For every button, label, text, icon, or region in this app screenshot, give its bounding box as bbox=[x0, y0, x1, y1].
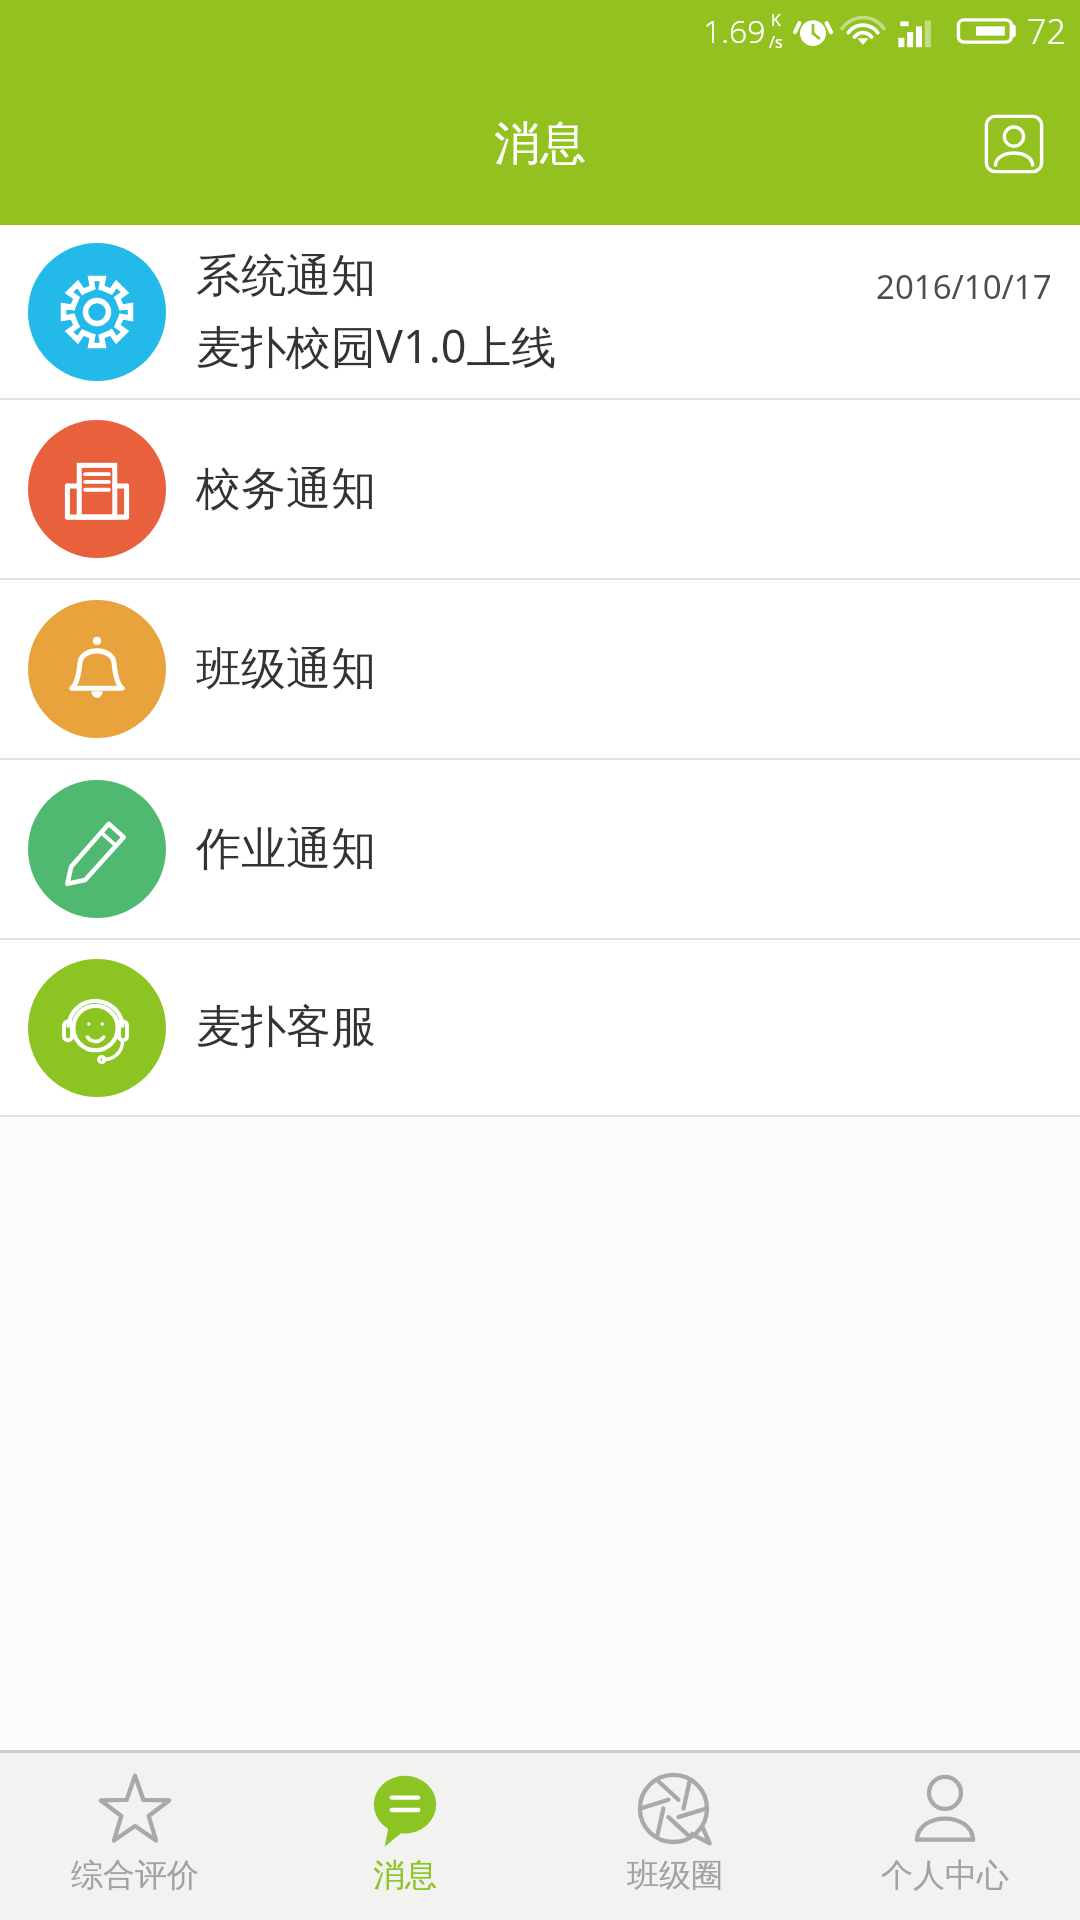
staticText: /s bbox=[769, 31, 783, 53]
staticText: 消息 bbox=[494, 115, 586, 173]
staticText: 综合评价 bbox=[71, 1855, 199, 1895]
staticText: 麦扑校园V1.0上线 bbox=[196, 315, 557, 376]
button[interactable]: 系统通知 bbox=[0, 225, 1080, 398]
button[interactable]: 作业通知 bbox=[0, 760, 1080, 938]
button[interactable]: 班级通知 bbox=[0, 580, 1080, 758]
staticText: 班级圈 bbox=[627, 1855, 723, 1895]
button[interactable]: 综合评价 bbox=[0, 1753, 270, 1920]
button[interactable]: Contacts bbox=[972, 102, 1056, 186]
staticText: 系统通知 bbox=[196, 248, 376, 305]
staticText: 个人中心 bbox=[881, 1855, 1009, 1895]
staticText: 校务通知 bbox=[196, 461, 376, 518]
button[interactable]: 个人中心 bbox=[810, 1753, 1080, 1920]
staticText: K bbox=[771, 9, 781, 31]
staticText: 麦扑客服 bbox=[196, 999, 376, 1056]
button[interactable]: 麦扑客服 bbox=[0, 940, 1080, 1115]
staticText: 消息 bbox=[373, 1855, 437, 1895]
staticText: 72 bbox=[1027, 8, 1066, 54]
button[interactable]: 消息 bbox=[270, 1753, 540, 1920]
staticText: 1.69 bbox=[703, 9, 766, 53]
staticText: 作业通知 bbox=[196, 821, 376, 878]
button[interactable]: 班级圈 bbox=[540, 1753, 810, 1920]
staticText: 班级通知 bbox=[196, 641, 376, 698]
staticText: 2016/10/17 bbox=[876, 264, 1052, 309]
button[interactable]: 校务通知 bbox=[0, 400, 1080, 578]
